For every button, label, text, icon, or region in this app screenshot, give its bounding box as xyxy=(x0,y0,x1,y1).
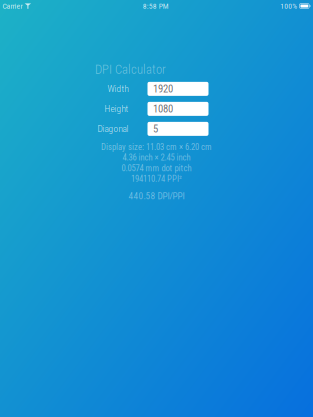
staticText: 5 xyxy=(153,123,158,135)
staticText: Display size: 11.03 cm × 6.20 cm xyxy=(101,142,212,152)
button[interactable]: 5 xyxy=(147,122,208,136)
staticText: 1920 xyxy=(153,83,173,95)
staticText: Width xyxy=(107,83,128,94)
staticText: 100% xyxy=(280,1,297,11)
staticText: 0.0574 mm dot pitch xyxy=(121,163,191,173)
staticText: 194110.74 PPI² xyxy=(131,174,182,184)
staticText: 1080 xyxy=(153,103,173,115)
staticText: Height xyxy=(104,103,128,114)
staticText: DPI Calculator xyxy=(95,62,166,77)
staticText: 440.58 DPI/PPI xyxy=(128,190,184,201)
staticText: Carrier xyxy=(2,1,22,11)
staticText: 8:58 PM xyxy=(143,1,169,11)
staticText: 4.36 inch × 2.45 inch xyxy=(122,152,190,163)
button[interactable]: 1920 xyxy=(147,82,208,96)
staticText: Diagonal xyxy=(97,123,128,134)
button[interactable]: 1080 xyxy=(147,102,208,116)
